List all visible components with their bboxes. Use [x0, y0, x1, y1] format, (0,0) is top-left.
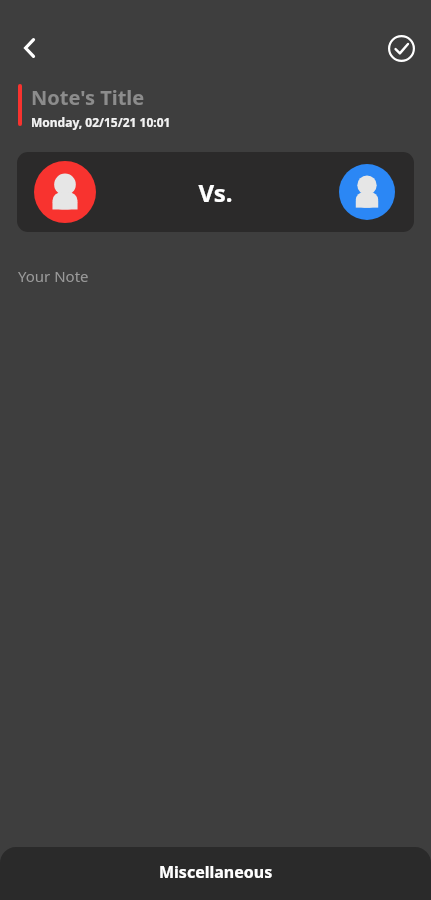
staticText: Monday, 02/15/21 10:01: [31, 114, 171, 130]
staticText: Note's Title: [31, 84, 145, 111]
staticText: Your Note: [18, 266, 89, 286]
button[interactable]: Second participant: [339, 164, 395, 220]
button[interactable]: Miscellaneous: [0, 847, 431, 900]
button[interactable]: Save note: [377, 24, 425, 72]
button[interactable]: Back: [6, 24, 54, 72]
button[interactable]: First participant: [17, 152, 414, 232]
button[interactable]: First participant: [34, 161, 96, 223]
staticText: Miscellaneous: [159, 861, 273, 883]
staticText: Vs.: [198, 176, 233, 209]
